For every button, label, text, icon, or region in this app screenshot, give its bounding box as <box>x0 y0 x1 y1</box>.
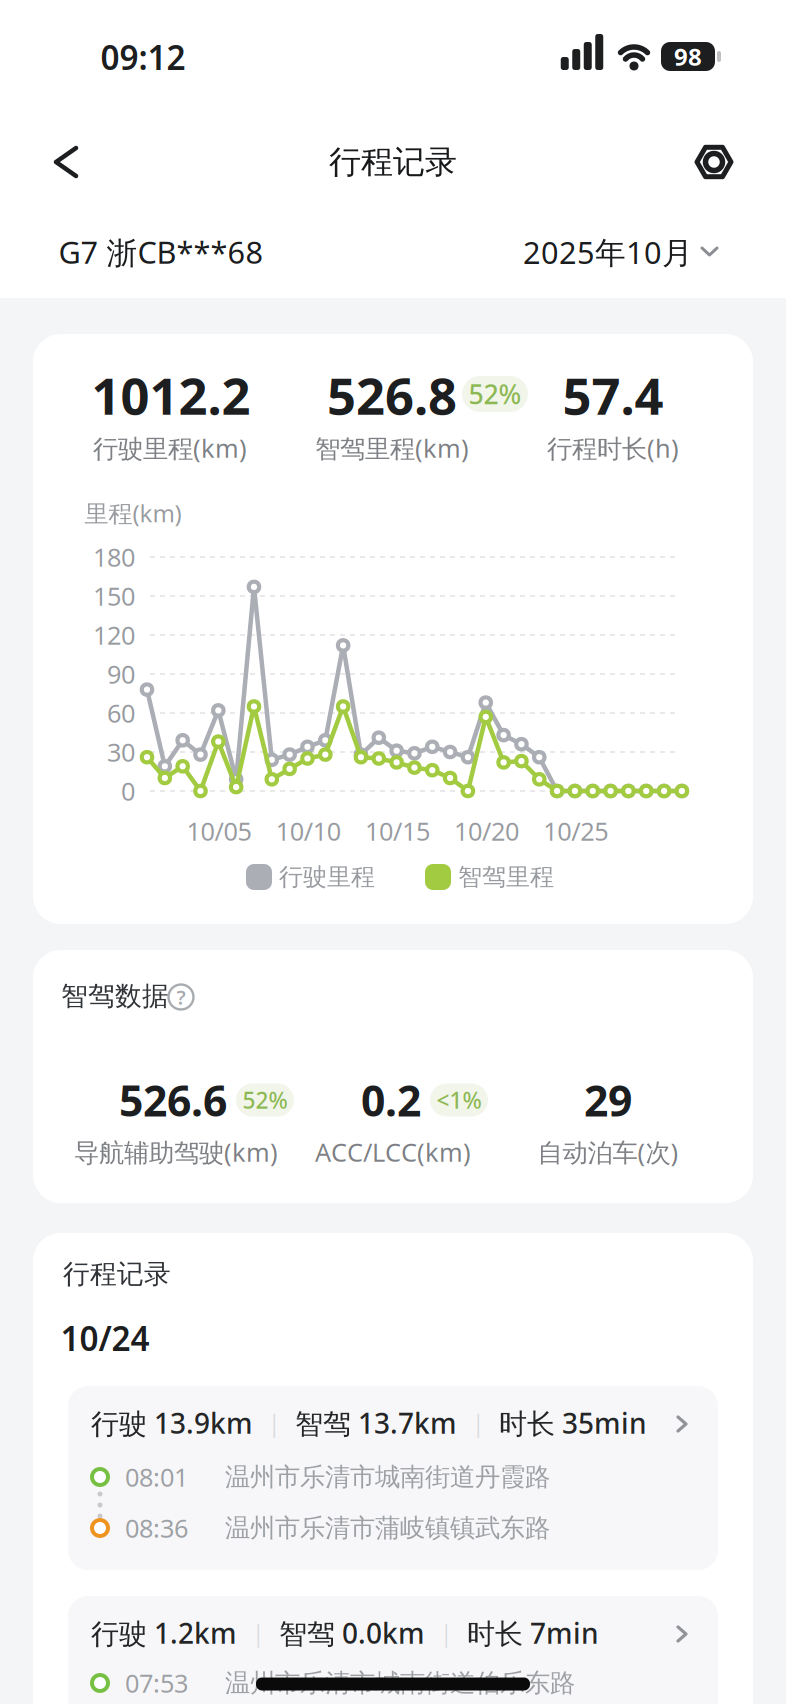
staticText: 10/10 <box>276 814 341 848</box>
staticText: 60 <box>107 696 135 730</box>
staticText: | <box>268 1408 280 1438</box>
staticText: 29 <box>584 1072 632 1128</box>
staticText: 智驾 13.7km <box>295 1404 457 1442</box>
staticText: 30 <box>107 735 135 769</box>
staticText: 行驶里程(km) <box>93 431 247 465</box>
button[interactable]: 行驶 13.9km <box>68 1386 718 1570</box>
staticText: 温州市乐清市蒲岐镇镇武东路 <box>225 1512 550 1543</box>
button[interactable]: Info <box>167 983 194 1010</box>
staticText: 智驾里程 <box>458 862 554 892</box>
button[interactable]: Settings <box>692 141 736 183</box>
staticText: 0 <box>121 774 135 808</box>
staticText: <1% <box>436 1085 481 1115</box>
staticText: 智驾里程(km) <box>315 431 469 465</box>
staticText: 526.6 <box>119 1072 227 1128</box>
staticText: 10/15 <box>365 814 430 848</box>
staticText: 09:12 <box>100 35 185 79</box>
staticText: 10/05 <box>186 814 251 848</box>
staticText: 时长 35min <box>499 1404 647 1442</box>
button[interactable]: 行驶 1.2km <box>68 1596 718 1704</box>
staticText: 行程时长(h) <box>547 431 679 465</box>
staticText: 自动泊车(次) <box>537 1135 678 1169</box>
staticText: ACC/LCC(km) <box>315 1135 471 1169</box>
staticText: 行程记录 <box>329 142 457 182</box>
staticText: 57.4 <box>562 361 663 429</box>
staticText: G7 浙CB***68 <box>58 232 263 272</box>
staticText: 120 <box>93 618 135 652</box>
staticText: 526.8 <box>327 361 457 429</box>
staticText: 行驶里程 <box>279 862 375 892</box>
staticText: 98 <box>674 41 702 72</box>
staticText: 10/24 <box>60 1316 149 1360</box>
staticText: 行驶 13.9km <box>91 1404 253 1442</box>
staticText: 导航辅助驾驶(km) <box>74 1135 278 1169</box>
staticText: 08:01 <box>125 1460 188 1494</box>
staticText: 1012.2 <box>91 361 250 429</box>
staticText: 温州市乐清市城南街道丹霞路 <box>225 1461 550 1492</box>
staticText: 180 <box>93 540 135 574</box>
staticText: 智驾 0.0km <box>279 1614 425 1652</box>
staticText: | <box>440 1618 452 1648</box>
staticText: 90 <box>107 657 135 691</box>
staticText: 52% <box>468 376 521 412</box>
staticText: 2025年10月 <box>523 232 693 272</box>
staticText: | <box>252 1618 264 1648</box>
staticText: 10/25 <box>543 814 608 848</box>
staticText: 150 <box>93 579 135 613</box>
staticText: 10/20 <box>454 814 519 848</box>
staticText: 行程记录 <box>63 1258 171 1290</box>
staticText: 52% <box>242 1085 287 1115</box>
staticText: 智驾数据 <box>61 980 169 1012</box>
staticText: 里程(km) <box>84 497 181 529</box>
staticText: 0.2 <box>361 1072 421 1128</box>
staticText: 时长 7min <box>467 1614 599 1652</box>
button[interactable]: Back <box>52 145 80 179</box>
staticText: 07:53 <box>125 1666 188 1700</box>
staticText: 行驶 1.2km <box>91 1614 237 1652</box>
staticText: ? <box>176 984 185 1010</box>
staticText: | <box>472 1408 484 1438</box>
staticText: 08:36 <box>125 1511 188 1545</box>
button[interactable]: 2025年10月 <box>523 232 719 272</box>
staticText: 温州市乐清市城南街道伯乐东路 <box>225 1667 575 1698</box>
